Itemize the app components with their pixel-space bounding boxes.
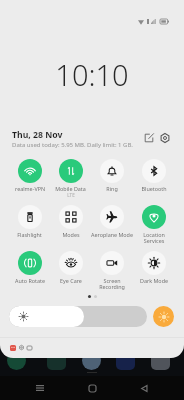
button[interactable]: Dark Mode (133, 251, 175, 297)
button[interactable]: Recents (28, 376, 52, 400)
staticText: Data used today: 5.95 MB. Daily limit: 1… (12, 141, 133, 149)
staticText: Auto Rotate (15, 277, 45, 284)
button[interactable]: Eye Care (50, 251, 91, 297)
button[interactable]: Flashlight (9, 205, 50, 251)
button[interactable]: Edit (139, 128, 158, 147)
staticText: LTE (67, 192, 75, 198)
button[interactable]: Brightness (9, 306, 147, 327)
button[interactable]: Mobile Data (50, 159, 91, 205)
staticText: Flashlight (17, 231, 42, 238)
button[interactable]: Modes (50, 205, 91, 251)
staticText: realme-VPN (15, 185, 45, 192)
button[interactable]: Location Services (133, 205, 175, 251)
button[interactable]: Ring (91, 159, 133, 205)
staticText: Thu, 28 Nov (12, 129, 63, 141)
button[interactable]: Bluetooth (133, 159, 175, 205)
button[interactable]: Auto brightness (153, 306, 174, 327)
staticText: Screen Recording (99, 277, 125, 291)
staticText: Ring (106, 185, 118, 192)
button[interactable]: Settings (155, 128, 174, 147)
staticText: Bluetooth (141, 185, 167, 192)
button[interactable]: Back (132, 376, 156, 400)
staticText: Location Services (143, 231, 165, 245)
button[interactable]: realme-VPN (9, 159, 50, 205)
staticText: Aeroplane Mode (91, 231, 133, 238)
staticText: Eye Care (60, 277, 82, 284)
staticText: Modes (62, 231, 80, 238)
button[interactable]: Auto Rotate (9, 251, 50, 297)
button[interactable]: Screen Recording (91, 251, 133, 297)
staticText: 10:10 (0, 55, 184, 94)
staticText: Mobile Data (55, 185, 86, 192)
button[interactable]: Aeroplane Mode (91, 205, 133, 251)
staticText: Dark Mode (140, 277, 168, 284)
button[interactable]: Home (80, 376, 104, 400)
